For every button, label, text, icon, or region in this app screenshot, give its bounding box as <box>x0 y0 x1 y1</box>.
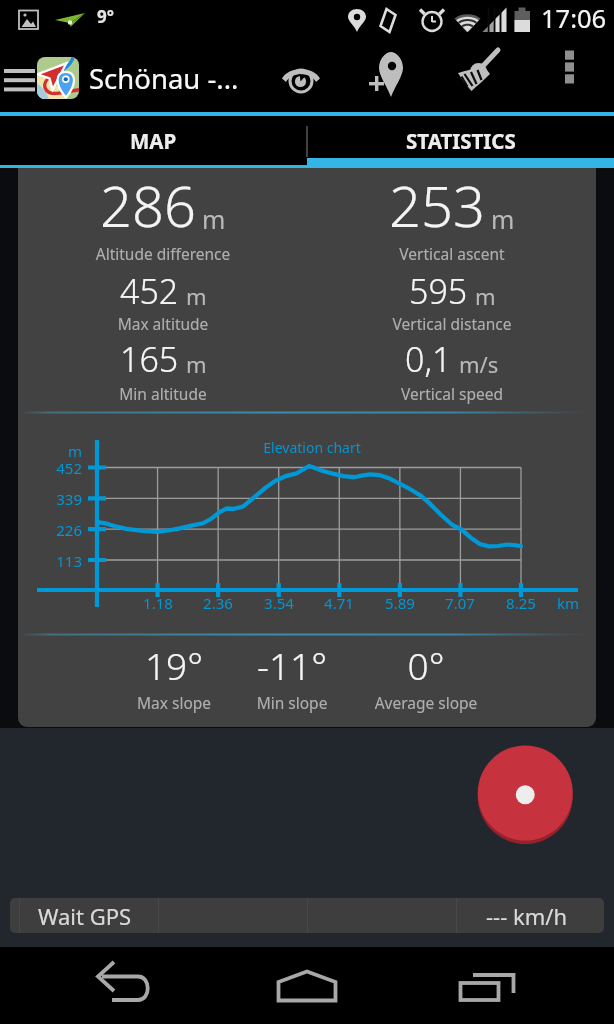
staticText: 452 <box>120 268 179 314</box>
button[interactable]: Wait GPS <box>10 898 604 933</box>
staticText: Schönau -... <box>89 60 239 97</box>
button[interactable]: Open navigation drawer <box>0 44 258 112</box>
staticText: Elevation chart <box>212 438 412 457</box>
staticText: m <box>202 202 226 236</box>
staticText: --- km/h <box>486 901 568 931</box>
staticText: 4.71 <box>309 593 369 613</box>
button[interactable]: MAP <box>0 112 307 168</box>
staticText: Altitude difference <box>18 243 323 264</box>
staticText: MAP <box>130 127 177 155</box>
button[interactable]: Home <box>252 947 362 1024</box>
button[interactable]: Visibility <box>264 44 338 112</box>
staticText: 165 <box>120 336 179 382</box>
staticText: 1.18 <box>128 593 188 613</box>
staticText: m <box>186 349 207 379</box>
staticText: m <box>475 281 496 311</box>
button[interactable]: Create waypoint <box>355 44 417 112</box>
staticText: m <box>491 202 515 236</box>
staticText: Min slope <box>192 692 392 713</box>
staticText: 339 <box>42 489 82 509</box>
button[interactable]: STATISTICS <box>307 112 614 168</box>
staticText: Vertical speed <box>292 383 596 404</box>
staticText: 17:06 <box>541 1 607 36</box>
staticText: 2.36 <box>188 593 248 613</box>
staticText: Max slope <box>74 692 274 713</box>
staticText: 3.54 <box>249 593 309 613</box>
button[interactable]: Clear track <box>450 44 512 112</box>
staticText: 5.89 <box>370 593 430 613</box>
staticText: 452 <box>42 458 82 478</box>
button[interactable]: Back <box>72 947 182 1024</box>
staticText: Vertical distance <box>292 313 596 334</box>
staticText: 19° <box>74 640 274 690</box>
staticText: 7.07 <box>430 593 490 613</box>
staticText: -11° <box>192 640 392 690</box>
staticText: 9° <box>97 5 114 28</box>
staticText: 8.25 <box>491 593 551 613</box>
button[interactable]: More options <box>540 44 600 112</box>
staticText: 0,1 <box>405 336 452 382</box>
staticText: Vertical ascent <box>292 243 596 264</box>
staticText: 0° <box>326 640 526 690</box>
staticText: 113 <box>42 551 82 571</box>
staticText: m/s <box>459 349 499 379</box>
staticText: m <box>42 441 82 461</box>
staticText: Max altitude <box>18 313 323 334</box>
staticText: m <box>186 281 207 311</box>
staticText: km <box>543 593 593 613</box>
staticText: Average slope <box>326 692 526 713</box>
staticText: 253 <box>389 168 485 243</box>
staticText: Wait GPS <box>38 901 132 931</box>
staticText: 595 <box>409 268 468 314</box>
staticText: 286 <box>100 168 196 243</box>
staticText: STATISTICS <box>406 127 516 155</box>
staticText: 226 <box>42 520 82 540</box>
button[interactable]: Start recording <box>475 744 575 844</box>
staticText: Min altitude <box>18 383 323 404</box>
button[interactable]: Recent apps <box>432 947 542 1024</box>
